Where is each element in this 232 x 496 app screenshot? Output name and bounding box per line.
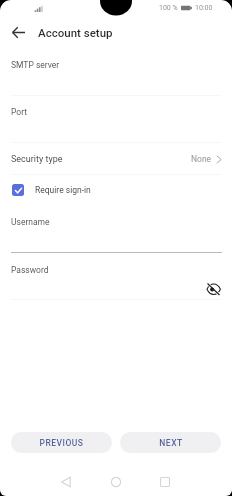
button[interactable]: Back	[53, 469, 79, 495]
button[interactable]: Recents	[152, 469, 178, 495]
staticText: Security type	[11, 154, 63, 165]
staticText: None	[191, 154, 212, 164]
button[interactable]: Back	[6, 20, 31, 45]
staticText: SMTP server	[11, 60, 60, 70]
staticText: 100 %	[159, 4, 178, 12]
staticText: Port	[11, 107, 28, 117]
button[interactable]: Require sign-in	[0, 180, 232, 199]
staticText: Username	[11, 217, 50, 227]
button[interactable]: Show password	[203, 275, 223, 295]
button[interactable]: NEXT	[120, 432, 221, 453]
staticText: PREVIOUS	[39, 438, 84, 448]
button[interactable]: Home	[103, 469, 129, 495]
staticText: Account setup	[38, 26, 113, 39]
staticText: NEXT	[159, 438, 183, 448]
staticText: Require sign-in	[35, 185, 91, 195]
staticText: 10:00	[195, 4, 213, 12]
staticText: Password	[11, 265, 49, 275]
button[interactable]: PREVIOUS	[11, 432, 112, 453]
button[interactable]: Security type	[0, 145, 232, 173]
